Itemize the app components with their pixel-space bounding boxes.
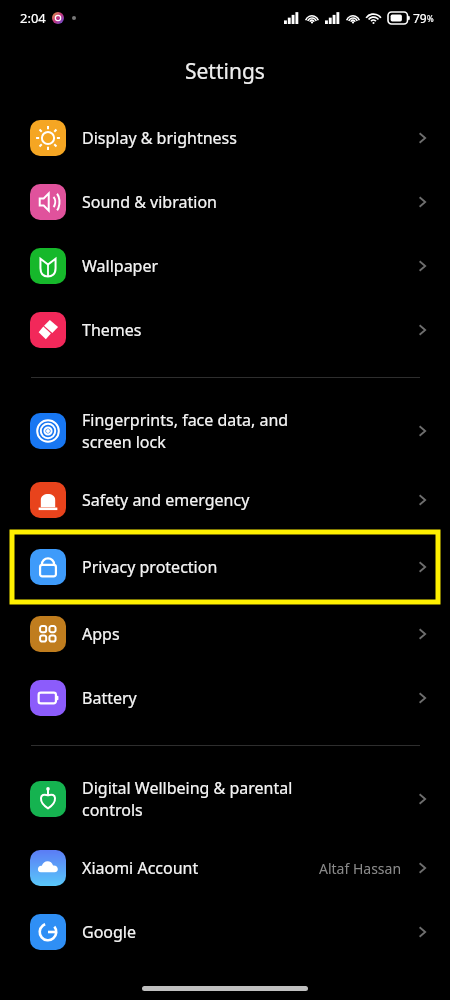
staticText: Fingerprints, face data, and screen lock [82,409,412,453]
staticText: Google [82,921,412,943]
staticText: Altaf Hassan [319,859,402,878]
button[interactable]: Safety and emergency [0,468,450,532]
staticText: Privacy protection [82,556,412,578]
button[interactable]: Privacy protection [12,532,438,602]
staticText: Themes [82,319,412,341]
button[interactable]: Google [0,900,450,964]
button[interactable]: Wallpaper [0,234,450,298]
button[interactable]: Apps [0,602,450,666]
button[interactable]: Themes [0,298,450,362]
staticText: Safety and emergency [82,489,412,511]
staticText: % [427,13,434,24]
staticText: Apps [82,623,412,645]
staticText: Sound & vibration [82,191,412,213]
button[interactable]: Sound & vibration [0,170,450,234]
staticText: Xiaomi Account [82,857,319,879]
button[interactable]: Fingerprints, face data, and screen lock [0,393,450,468]
staticText: Display & brightness [82,127,412,149]
button[interactable]: Display & brightness [0,106,450,170]
button[interactable]: Digital Wellbeing & parental controls [0,761,450,836]
button[interactable]: Xiaomi Account [0,836,450,900]
staticText: 2:04 [20,9,46,27]
staticText: Battery [82,687,412,709]
staticText: 79 [413,10,427,26]
staticText: Settings [185,57,265,86]
staticText: Digital Wellbeing & parental controls [82,777,412,821]
button[interactable]: Battery [0,666,450,730]
staticText: Wallpaper [82,255,412,277]
